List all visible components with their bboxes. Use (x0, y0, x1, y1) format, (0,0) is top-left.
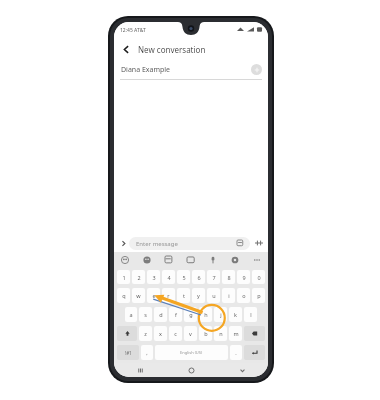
button[interactable]: Add recipient (251, 64, 262, 75)
button[interactable]: p (252, 288, 265, 303)
button[interactable]: Home (166, 363, 217, 377)
button[interactable]: More (253, 237, 265, 249)
button[interactable]: Keyboard settings (114, 252, 136, 267)
staticText: r (167, 292, 170, 299)
staticText: o (242, 292, 246, 299)
button[interactable]: u (207, 288, 220, 303)
button[interactable]: Backspace (244, 326, 265, 341)
staticText: 5 (182, 274, 186, 281)
button[interactable]: Back (118, 41, 134, 57)
button[interactable]: Diana Example (114, 60, 268, 79)
staticText: g (189, 311, 193, 318)
button[interactable]: x (154, 326, 167, 341)
button[interactable]: h (199, 307, 212, 322)
staticText: 3 (152, 274, 156, 281)
staticText: t (183, 292, 185, 299)
button[interactable]: r (162, 288, 175, 303)
button[interactable]: Enter (244, 345, 265, 360)
button[interactable]: i (222, 288, 235, 303)
button[interactable]: d (154, 307, 167, 322)
staticText: v (189, 330, 192, 337)
staticText: 0 (257, 274, 261, 281)
button[interactable]: m (229, 326, 242, 341)
staticText: x (159, 330, 162, 337)
staticText: New conversation (138, 44, 206, 55)
staticText: 7 (212, 274, 216, 281)
staticText: Enter message (136, 240, 178, 248)
button[interactable]: . (230, 345, 242, 360)
staticText: a (129, 311, 133, 318)
staticText: 9 (242, 274, 246, 281)
staticText: z (144, 330, 147, 337)
staticText: , (146, 349, 148, 356)
button[interactable]: s (139, 307, 152, 322)
button[interactable]: c (169, 326, 182, 341)
staticText: y (197, 292, 200, 299)
button[interactable]: e (147, 288, 160, 303)
staticText: u (212, 292, 216, 299)
button[interactable]: 0 (252, 270, 265, 284)
staticText: w (136, 292, 141, 299)
other: Attach (236, 239, 245, 248)
staticText: 1 (122, 274, 126, 281)
staticText: i (228, 292, 230, 299)
staticText: 12:45 AT&T (120, 27, 146, 34)
button[interactable]: l (244, 307, 257, 322)
button[interactable]: Voice input (202, 252, 224, 267)
button[interactable]: 1 (117, 270, 130, 284)
button[interactable]: o (237, 288, 250, 303)
button[interactable]: 6 (192, 270, 205, 284)
button[interactable]: 8 (222, 270, 235, 284)
button[interactable]: Stickers (158, 252, 180, 267)
button[interactable]: Settings (224, 252, 246, 267)
button[interactable]: v (184, 326, 197, 341)
button[interactable]: Emoji (136, 252, 158, 267)
button[interactable]: More options (246, 252, 268, 267)
button[interactable]: 7 (207, 270, 220, 284)
staticText: p (257, 292, 261, 299)
staticText: English (US) (180, 350, 203, 355)
button[interactable]: , (141, 345, 153, 360)
button[interactable]: a (125, 307, 137, 322)
button[interactable]: Enter message (129, 237, 250, 250)
staticText: . (235, 349, 237, 356)
button[interactable]: q (117, 288, 130, 303)
staticText: k (234, 311, 237, 318)
staticText: !#1 (125, 350, 132, 356)
staticText: e (152, 292, 156, 299)
button[interactable]: k (229, 307, 242, 322)
staticText: 6 (197, 274, 201, 281)
button[interactable]: GIF (180, 252, 202, 267)
staticText: j (220, 311, 222, 318)
staticText: b (204, 330, 208, 337)
button[interactable]: Hide keyboard (217, 363, 268, 377)
button[interactable]: f (169, 307, 182, 322)
button[interactable]: 9 (237, 270, 250, 284)
button[interactable]: g (184, 307, 197, 322)
button[interactable]: j (214, 307, 227, 322)
staticText: l (250, 311, 252, 318)
staticText: c (174, 330, 177, 337)
button[interactable]: b (199, 326, 212, 341)
button[interactable]: w (132, 288, 145, 303)
staticText: d (159, 311, 163, 318)
staticText: 4 (167, 274, 171, 281)
button[interactable]: n (214, 326, 227, 341)
staticText: h (204, 311, 208, 318)
button[interactable]: Shift (117, 326, 137, 341)
button[interactable]: 5 (177, 270, 190, 284)
button[interactable]: Recent apps (114, 363, 166, 377)
button[interactable]: !#1 (117, 345, 139, 360)
button[interactable]: t (177, 288, 190, 303)
button[interactable]: y (192, 288, 205, 303)
staticText: 2 (137, 274, 141, 281)
staticText: f (175, 311, 177, 318)
button[interactable]: z (139, 326, 152, 341)
button[interactable]: Expand options (117, 237, 129, 249)
staticText: 8 (227, 274, 231, 281)
button[interactable]: English (US) (155, 345, 228, 360)
button[interactable]: 2 (132, 270, 145, 284)
staticText: Diana Example (121, 65, 171, 75)
button[interactable]: 3 (147, 270, 160, 284)
button[interactable]: 4 (162, 270, 175, 284)
